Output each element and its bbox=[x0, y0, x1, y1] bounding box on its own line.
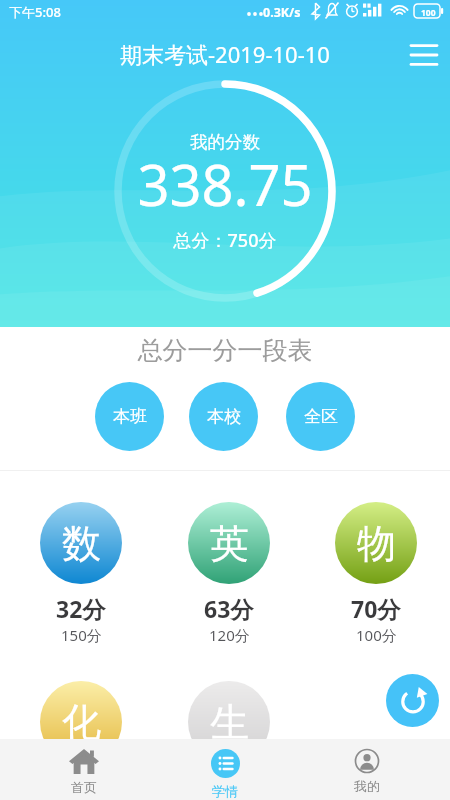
staticText: 期末考试-2019-10-10 bbox=[120, 39, 330, 69]
button[interactable]: 物 bbox=[324, 502, 428, 645]
staticText: 学情 bbox=[212, 783, 238, 799]
staticText: 本班 bbox=[113, 406, 147, 427]
staticText: 总分：750分 bbox=[112, 228, 338, 253]
staticText: 本校 bbox=[207, 406, 241, 427]
staticText: 数 bbox=[62, 519, 101, 568]
staticText: 100 bbox=[421, 7, 436, 19]
staticText: 100分 bbox=[356, 625, 397, 645]
button[interactable]: 数 bbox=[29, 502, 133, 645]
staticText: 我的 bbox=[354, 778, 380, 794]
staticText: 32分 bbox=[56, 593, 106, 624]
staticText: 我的分数 bbox=[112, 131, 338, 153]
staticText: 英 bbox=[210, 519, 249, 568]
staticText: 物 bbox=[357, 519, 396, 568]
button[interactable]: 生 bbox=[177, 681, 281, 763]
staticText: 化 bbox=[62, 698, 101, 747]
button[interactable]: 学情 bbox=[190, 745, 260, 800]
button[interactable]: Menu bbox=[402, 34, 446, 78]
staticText: 0.3K/s bbox=[263, 4, 301, 21]
button[interactable]: Refresh bbox=[386, 674, 439, 727]
button[interactable]: 本校 bbox=[189, 382, 258, 451]
staticText: 338.75 bbox=[112, 146, 338, 222]
staticText: 70分 bbox=[351, 593, 401, 624]
staticText: 63分 bbox=[204, 593, 254, 624]
staticText: 全区 bbox=[304, 406, 338, 427]
button[interactable]: 我的 bbox=[332, 745, 402, 800]
staticText: 总分一分一段表 bbox=[0, 335, 450, 366]
button[interactable]: 全区 bbox=[286, 382, 355, 451]
staticText: 150分 bbox=[61, 625, 102, 645]
staticText: 首页 bbox=[71, 779, 97, 795]
button[interactable]: 首页 bbox=[49, 745, 119, 800]
staticText: 120分 bbox=[209, 625, 250, 645]
button[interactable]: 本班 bbox=[95, 382, 164, 451]
staticText: 下午5:08 bbox=[9, 3, 61, 21]
staticText: 生 bbox=[210, 698, 249, 747]
button[interactable]: 英 bbox=[177, 502, 281, 645]
button[interactable]: 化 bbox=[29, 681, 133, 763]
